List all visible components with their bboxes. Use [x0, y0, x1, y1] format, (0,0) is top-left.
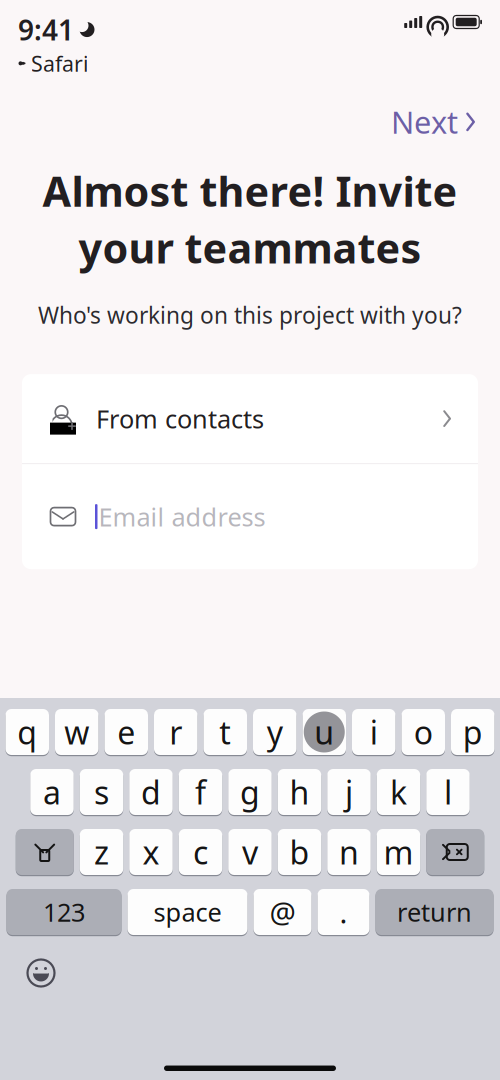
button[interactable]: t — [203, 708, 247, 756]
staticText: Almost there! Invite — [42, 163, 457, 218]
button[interactable]: u — [302, 708, 346, 756]
button[interactable]: g — [228, 768, 272, 816]
staticText: m — [383, 831, 413, 873]
button[interactable]: From contacts — [22, 374, 478, 463]
staticText: j — [345, 771, 353, 813]
button[interactable]: w — [55, 708, 98, 756]
staticText: u — [314, 711, 334, 753]
staticText: w — [64, 711, 89, 753]
button[interactable]: x — [129, 828, 173, 876]
staticText: your teammates — [78, 220, 421, 275]
button[interactable]: z — [80, 828, 123, 876]
button[interactable]: Emoji — [0, 950, 74, 996]
button[interactable]: b — [278, 828, 321, 876]
staticText: b — [289, 831, 309, 873]
staticText: return — [397, 895, 472, 929]
button[interactable]: . — [317, 888, 369, 936]
staticText: k — [390, 771, 407, 813]
button[interactable]: space — [127, 888, 247, 936]
staticText: Next — [391, 101, 458, 142]
button[interactable]: l — [426, 768, 470, 816]
staticText: v — [242, 831, 258, 873]
staticText: o — [414, 711, 433, 753]
staticText: c — [193, 831, 208, 873]
button[interactable]: 123 — [6, 888, 121, 936]
staticText: p — [463, 711, 483, 753]
button[interactable]: q — [5, 708, 49, 756]
button[interactable]: a — [30, 768, 74, 816]
button[interactable]: e — [104, 708, 148, 756]
button[interactable]: c — [179, 828, 222, 876]
staticText: i — [370, 711, 378, 753]
button[interactable]: k — [377, 768, 420, 816]
button[interactable]: v — [228, 828, 272, 876]
staticText: y — [267, 711, 283, 753]
button[interactable]: Next — [375, 93, 492, 150]
button[interactable]: i — [352, 708, 395, 756]
staticText: u — [314, 711, 334, 753]
button[interactable]: Shift — [16, 828, 74, 876]
button[interactable]: y — [253, 708, 296, 756]
staticText: space — [153, 895, 221, 929]
button[interactable]: s — [80, 768, 123, 816]
staticText: Email address — [98, 500, 265, 533]
staticText: r — [169, 711, 182, 753]
staticText: x — [142, 831, 159, 873]
staticText: h — [289, 771, 309, 813]
button[interactable]: n — [327, 828, 371, 876]
staticText: z — [94, 831, 109, 873]
staticText: l — [444, 771, 452, 813]
staticText: e — [117, 711, 135, 753]
staticText: t — [219, 711, 231, 753]
button[interactable]: m — [377, 828, 420, 876]
button[interactable]: Delete — [426, 828, 484, 876]
button[interactable]: r — [154, 708, 197, 756]
button[interactable]: h — [278, 768, 321, 816]
button[interactable]: j — [327, 768, 371, 816]
button[interactable]: d — [129, 768, 173, 816]
staticText: f — [195, 771, 206, 813]
button[interactable]: Email address — [22, 464, 478, 569]
staticText: g — [240, 771, 260, 813]
staticText: s — [94, 771, 109, 813]
staticText: n — [339, 831, 359, 873]
button[interactable]: o — [401, 708, 445, 756]
button[interactable]: @ — [253, 888, 311, 936]
staticText: 9:41 — [18, 11, 74, 48]
button[interactable]: p — [451, 708, 494, 756]
staticText: Who's working on this project with you? — [38, 300, 462, 330]
staticText: a — [43, 771, 61, 813]
button[interactable]: return — [375, 888, 493, 936]
staticText: q — [17, 711, 37, 753]
staticText: From contacts — [96, 402, 264, 435]
staticText: . — [339, 892, 347, 931]
staticText: Safari — [31, 49, 89, 77]
staticText: @ — [269, 892, 295, 931]
button[interactable]: f — [179, 768, 222, 816]
staticText: 123 — [43, 895, 85, 929]
staticText: d — [141, 771, 161, 813]
